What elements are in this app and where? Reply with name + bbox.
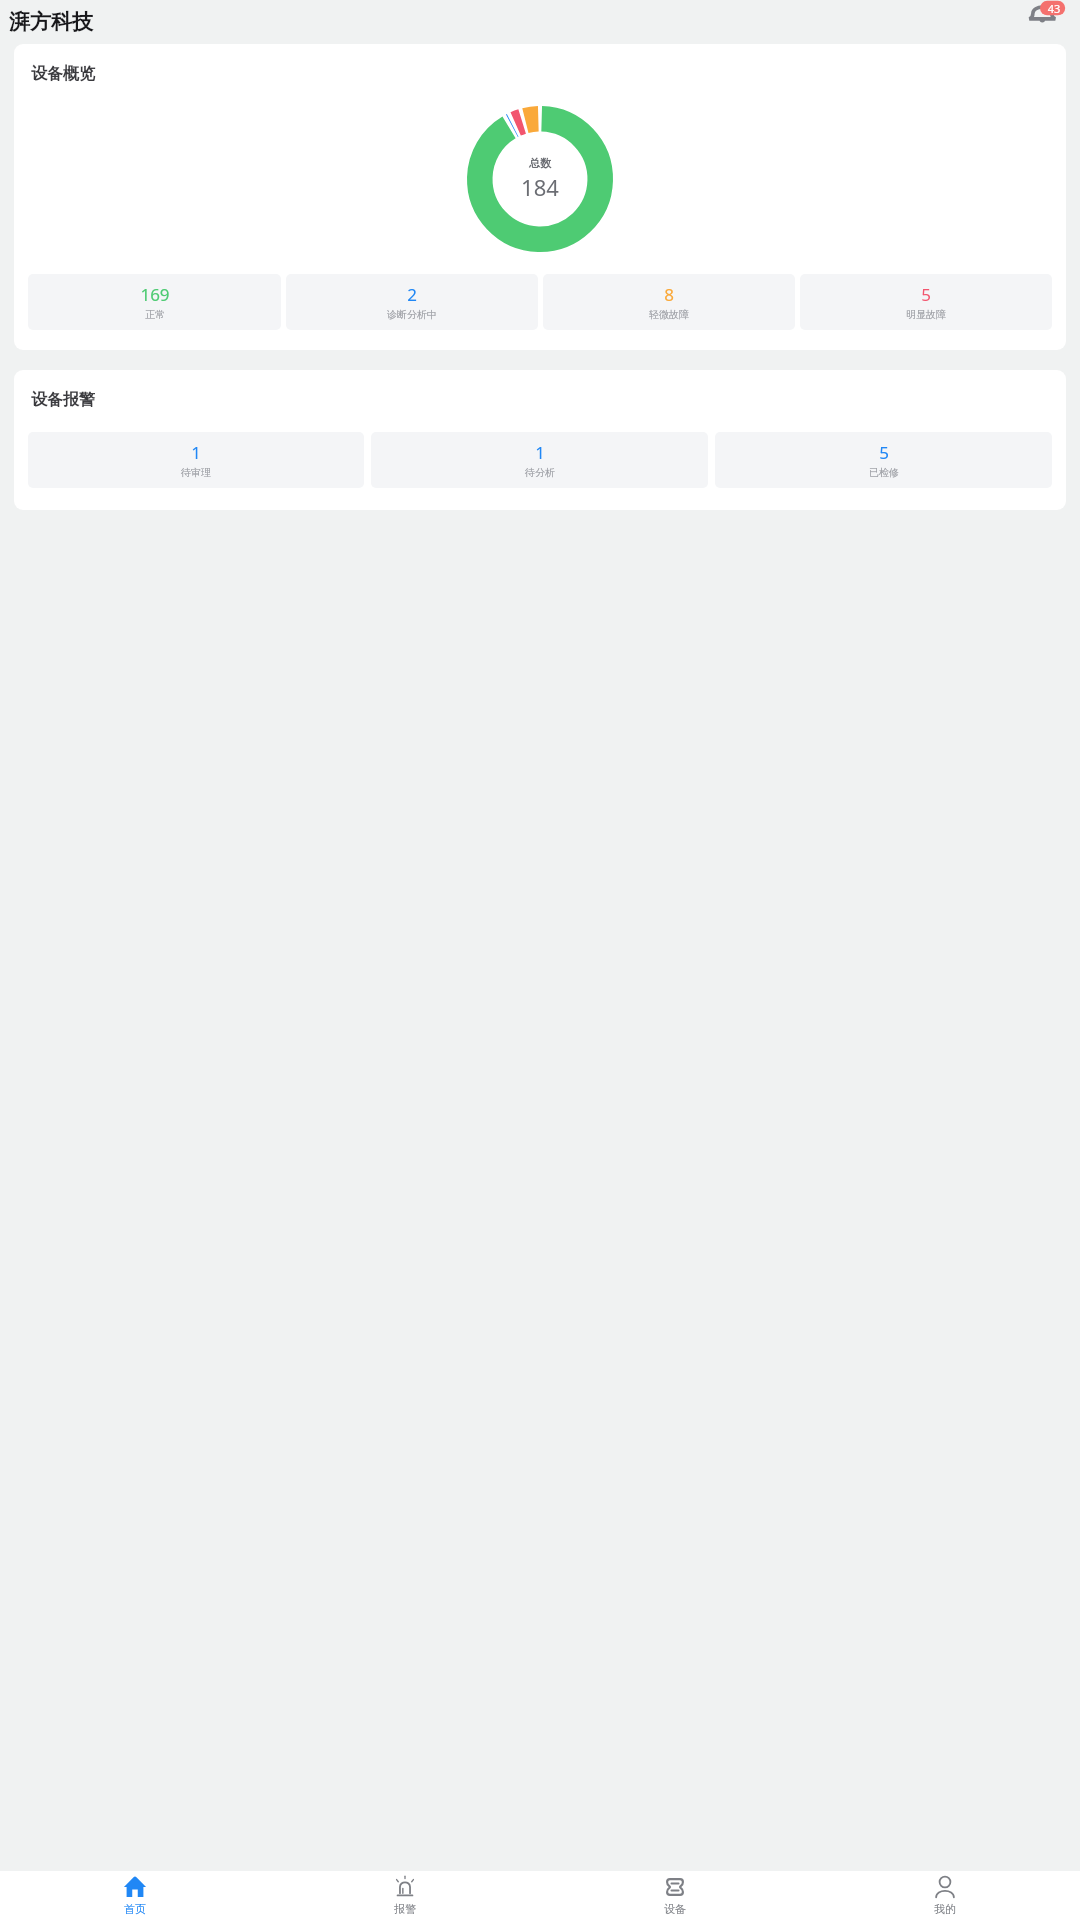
button[interactable]: 设备 xyxy=(540,1871,810,1920)
button[interactable]: 2 xyxy=(286,274,538,330)
button[interactable]: 5 xyxy=(800,274,1052,330)
staticText: 待分析 xyxy=(525,466,555,479)
staticText: 明显故障 xyxy=(906,308,946,321)
staticText: 诊断分析中 xyxy=(387,308,437,321)
staticText: 首页 xyxy=(124,1902,146,1916)
staticText: 5 xyxy=(921,283,931,306)
button[interactable]: 5 xyxy=(715,432,1052,488)
staticText: 5 xyxy=(879,441,889,464)
staticText: 设备报警 xyxy=(31,390,95,410)
button[interactable]: 首页 xyxy=(0,1871,270,1920)
staticText: 报警 xyxy=(394,1902,416,1916)
staticText: 待审理 xyxy=(181,466,211,479)
button[interactable]: 169 xyxy=(28,274,281,330)
staticText: 已检修 xyxy=(869,466,899,479)
staticText: 1 xyxy=(191,441,201,464)
button[interactable]: 8 xyxy=(543,274,795,330)
staticText: 1 xyxy=(535,441,545,464)
staticText: 43 xyxy=(1043,1,1065,15)
staticText: 我的 xyxy=(934,1902,956,1916)
staticText: 总数 xyxy=(529,156,551,170)
button[interactable]: 报警 xyxy=(270,1871,540,1920)
button[interactable]: 我的 xyxy=(810,1871,1080,1920)
staticText: 湃方科技 xyxy=(9,9,93,35)
button[interactable]: Notifications xyxy=(1022,0,1066,44)
staticText: 设备概览 xyxy=(31,64,95,84)
staticText: 设备 xyxy=(664,1902,686,1916)
staticText: 8 xyxy=(664,283,674,306)
button[interactable]: 1 xyxy=(28,432,364,488)
staticText: 2 xyxy=(407,283,417,306)
staticText: 169 xyxy=(140,283,170,306)
staticText: 正常 xyxy=(145,308,165,321)
staticText: 轻微故障 xyxy=(649,308,689,321)
staticText: 184 xyxy=(521,172,559,202)
button[interactable]: 1 xyxy=(371,432,708,488)
